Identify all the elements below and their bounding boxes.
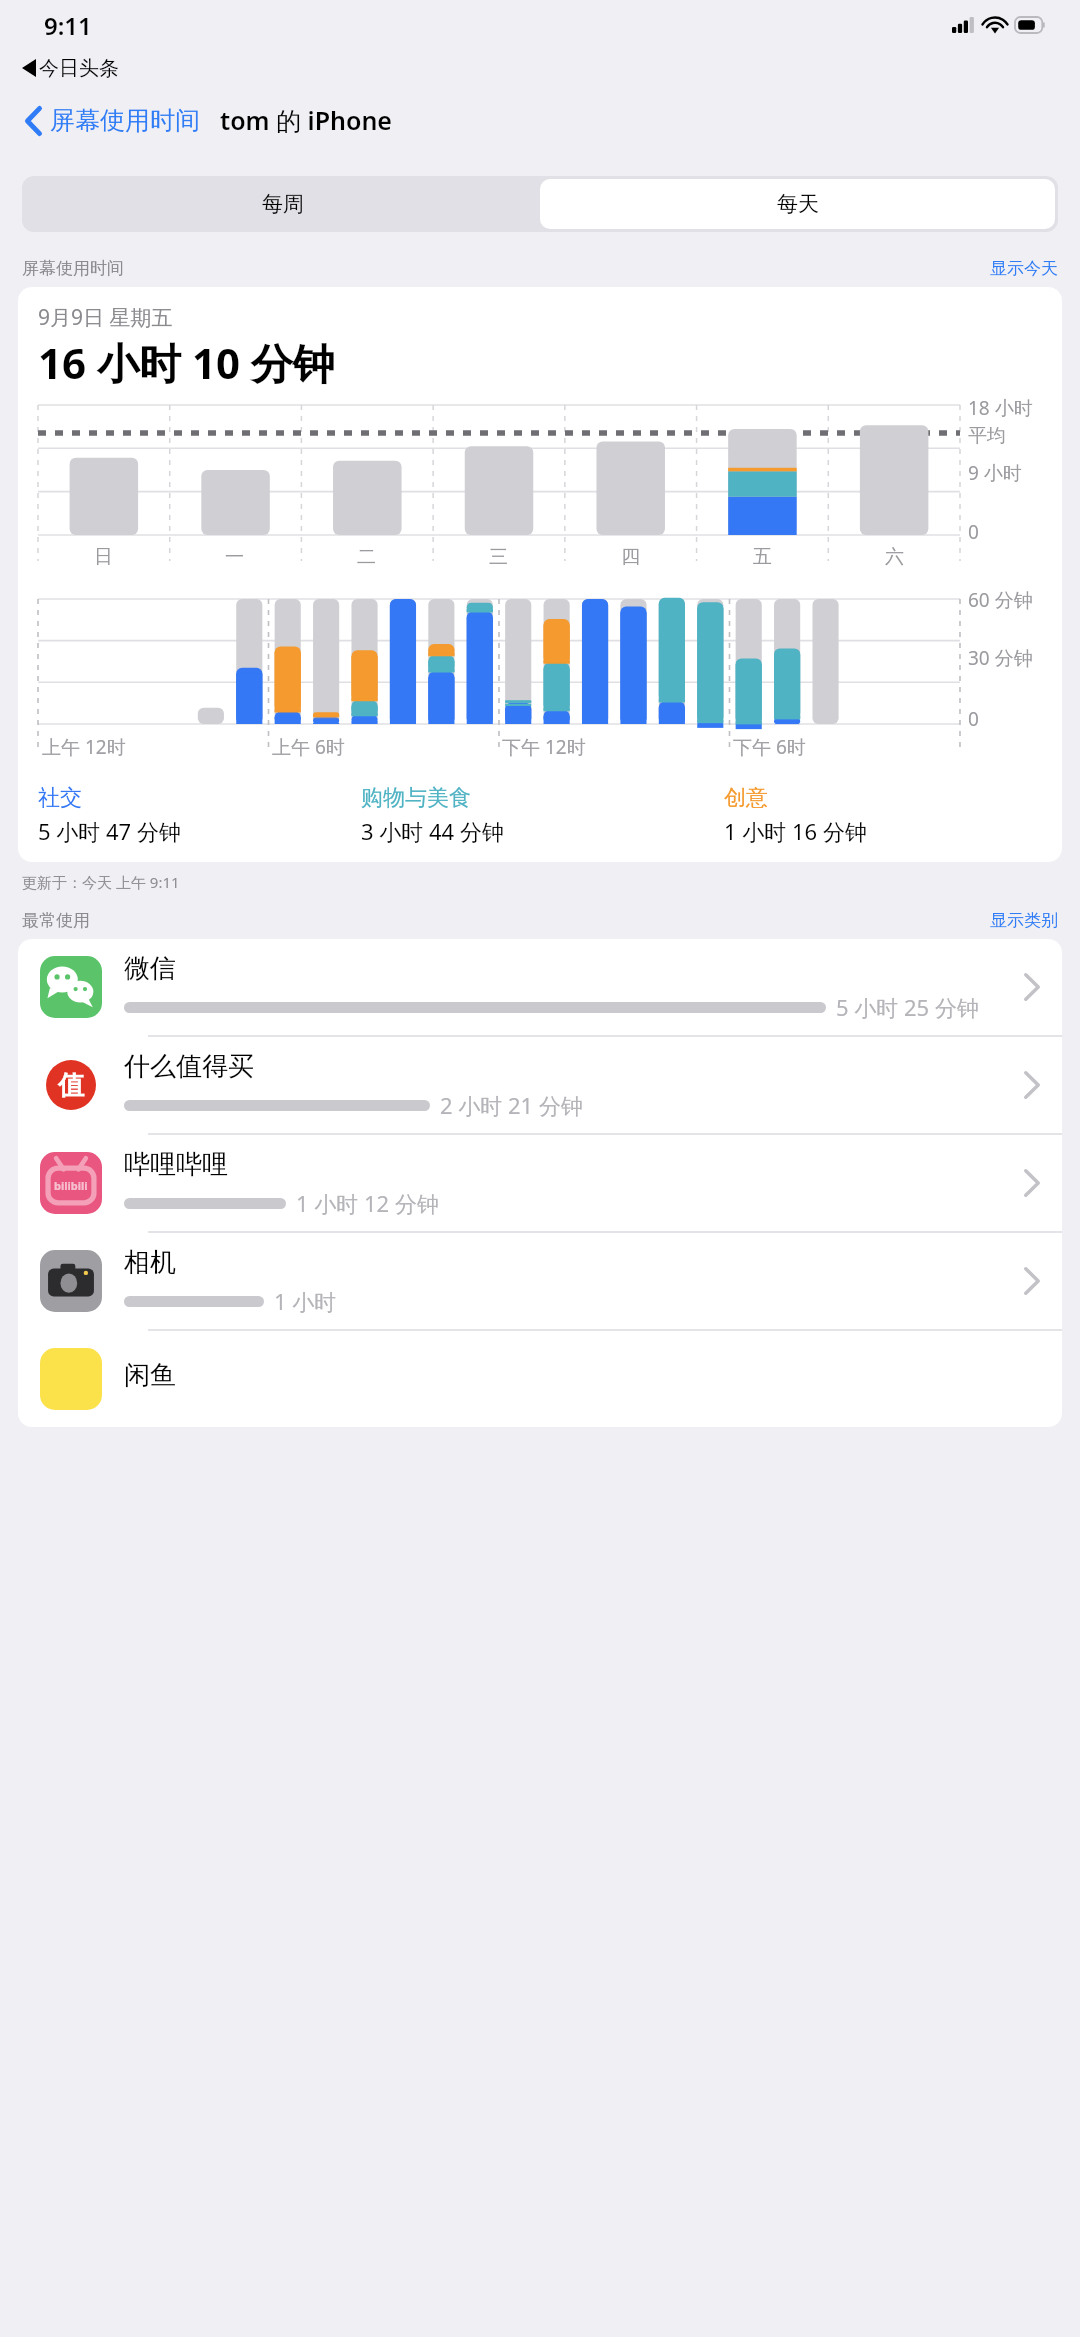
staticText: 下午 6时 bbox=[733, 734, 806, 760]
staticText: 30 分钟 bbox=[968, 645, 1033, 671]
staticText: 日 bbox=[94, 545, 113, 569]
staticText: 四 bbox=[621, 545, 640, 569]
staticText: 5 小时 47 分钟 bbox=[38, 816, 181, 846]
staticText: 18 小时 bbox=[968, 395, 1033, 421]
staticText: 显示类别 bbox=[990, 910, 1058, 931]
staticText: 下午 12时 bbox=[502, 734, 586, 760]
staticText: 9:11 bbox=[44, 9, 92, 42]
staticText: 六 bbox=[885, 545, 904, 569]
staticText: 每天 bbox=[777, 191, 819, 217]
staticText: 平均 bbox=[968, 424, 1006, 448]
button[interactable]: bilibili bbox=[18, 1135, 1062, 1231]
staticText: tom 的 iPhone bbox=[220, 103, 392, 137]
staticText: 2 小时 21 分钟 bbox=[440, 1090, 583, 1120]
staticText: 1 小时 bbox=[274, 1286, 337, 1316]
staticText: 一 bbox=[225, 545, 244, 569]
staticText: 五 bbox=[753, 545, 772, 569]
staticText: 什么值得买 bbox=[124, 1050, 254, 1083]
staticText: 3 小时 44 分钟 bbox=[361, 816, 504, 846]
staticText: 显示今天 bbox=[990, 258, 1058, 279]
staticText: 社交 bbox=[38, 784, 82, 812]
staticText: 9 小时 bbox=[968, 460, 1022, 486]
staticText: 创意 bbox=[724, 784, 768, 812]
staticText: 购物与美食 bbox=[361, 784, 471, 812]
staticText: 上午 6时 bbox=[272, 734, 345, 760]
button[interactable]: 社交 bbox=[38, 784, 361, 846]
staticText: 微信 bbox=[124, 952, 176, 985]
button[interactable]: 购物与美食 bbox=[361, 784, 724, 846]
staticText: 5 小时 25 分钟 bbox=[836, 992, 979, 1022]
button[interactable]: 创意 bbox=[724, 784, 1048, 846]
staticText: 上午 12时 bbox=[42, 734, 126, 760]
staticText: 哔哩哔哩 bbox=[124, 1148, 228, 1181]
button[interactable]: 显示今天 bbox=[990, 258, 1058, 279]
button[interactable]: 相机 bbox=[18, 1233, 1062, 1329]
staticText: 最常使用 bbox=[22, 910, 90, 931]
staticText: bilibili bbox=[54, 1178, 88, 1193]
button[interactable]: 每周 bbox=[25, 179, 540, 229]
staticText: 相机 bbox=[124, 1246, 176, 1279]
button[interactable]: 屏幕使用时间 bbox=[18, 99, 206, 142]
staticText: 更新于：今天 上午 9:11 bbox=[22, 872, 180, 892]
button[interactable]: 每天 bbox=[540, 179, 1055, 229]
staticText: 9月9日 星期五 bbox=[38, 303, 173, 332]
button[interactable]: 闲鱼 bbox=[18, 1331, 1062, 1427]
staticText: 闲鱼 bbox=[124, 1359, 176, 1392]
button[interactable]: 值 bbox=[18, 1037, 1062, 1133]
staticText: 三 bbox=[489, 545, 508, 569]
staticText: 每周 bbox=[262, 191, 304, 217]
staticText: 0 bbox=[968, 519, 979, 545]
staticText: 二 bbox=[357, 545, 376, 569]
button[interactable]: 显示类别 bbox=[990, 910, 1058, 931]
button[interactable]: 微信 bbox=[18, 939, 1062, 1035]
button[interactable]: 今日头条 bbox=[22, 50, 1080, 86]
staticText: 60 分钟 bbox=[968, 587, 1033, 613]
staticText: 屏幕使用时间 bbox=[50, 105, 200, 136]
staticText: 今日头条 bbox=[39, 56, 119, 81]
staticText: 16 小时 10 分钟 bbox=[38, 334, 335, 391]
staticText: 1 小时 12 分钟 bbox=[296, 1188, 439, 1218]
staticText: 1 小时 16 分钟 bbox=[724, 816, 867, 846]
staticText: 0 bbox=[968, 706, 979, 732]
staticText: 屏幕使用时间 bbox=[22, 258, 124, 279]
staticText: 值 bbox=[58, 1069, 84, 1102]
